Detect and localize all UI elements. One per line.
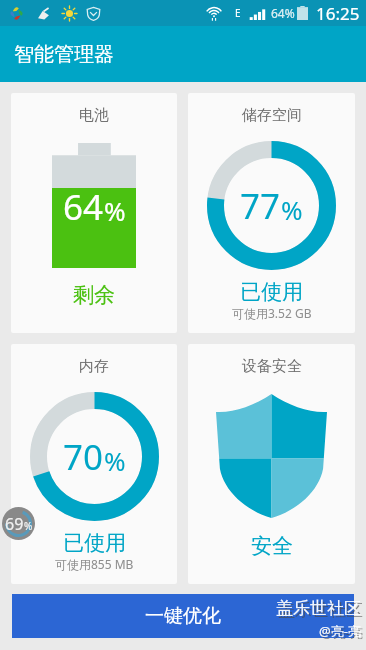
button[interactable]: 储存空间 bbox=[188, 93, 355, 333]
staticText: 64% bbox=[271, 5, 295, 21]
staticText: 70 bbox=[63, 433, 104, 481]
staticText: 设备安全 bbox=[242, 357, 302, 376]
staticText: 可使用3.52 GB bbox=[232, 305, 312, 321]
staticText: 已使用 bbox=[63, 530, 126, 556]
button[interactable]: 一键优化 bbox=[12, 594, 354, 638]
staticText: 16:25 bbox=[316, 2, 360, 25]
staticText: 内存 bbox=[79, 357, 109, 376]
staticText: % bbox=[104, 193, 126, 228]
staticText: 可使用855 MB bbox=[55, 556, 134, 572]
staticText: E bbox=[235, 6, 241, 20]
staticText: 已使用 bbox=[240, 279, 303, 305]
button[interactable]: 电池 bbox=[11, 93, 177, 333]
staticText: 77 bbox=[240, 182, 281, 230]
staticText: 智能管理器 bbox=[14, 42, 114, 67]
staticText: 69 bbox=[5, 513, 24, 535]
button[interactable]: 内存 bbox=[11, 344, 177, 584]
staticText: 剩余 bbox=[73, 282, 115, 308]
button[interactable]: Memory cleaner 69 percent bbox=[2, 507, 35, 540]
staticText: @亮-亮 bbox=[321, 624, 363, 642]
staticText: % bbox=[104, 443, 126, 478]
staticText: 电池 bbox=[79, 106, 109, 125]
staticText: % bbox=[24, 519, 33, 533]
staticText: 一键优化 bbox=[145, 604, 221, 628]
staticText: 盖乐世社区 bbox=[278, 600, 363, 621]
staticText: @亮-亮 bbox=[319, 622, 361, 640]
staticText: 安全 bbox=[251, 533, 293, 559]
staticText: 64 bbox=[63, 183, 104, 231]
staticText: 储存空间 bbox=[242, 106, 302, 125]
button[interactable]: 设备安全 bbox=[188, 344, 355, 584]
staticText: % bbox=[281, 192, 303, 227]
staticText: 盖乐世社区 bbox=[276, 598, 361, 619]
